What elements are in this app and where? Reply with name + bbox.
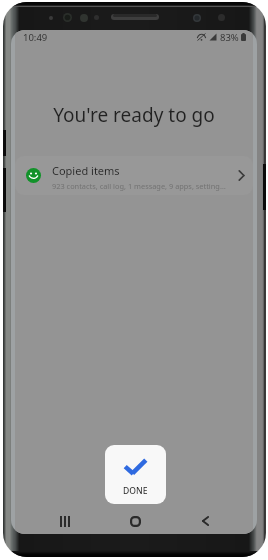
button[interactable]: Back [192,508,218,534]
staticText: You're ready to go [15,102,253,128]
button[interactable]: DONE [105,445,166,504]
button[interactable]: Home [122,508,148,534]
button[interactable]: Recent apps [52,508,78,534]
staticText: 83% [220,31,239,44]
staticText: DONE [123,485,148,497]
button[interactable]: Copied items [15,156,253,195]
staticText: 10:49 [23,31,48,44]
staticText: Copied items [52,163,120,178]
staticText: 923 contacts, call log, 1 message, 9 app… [52,181,226,191]
